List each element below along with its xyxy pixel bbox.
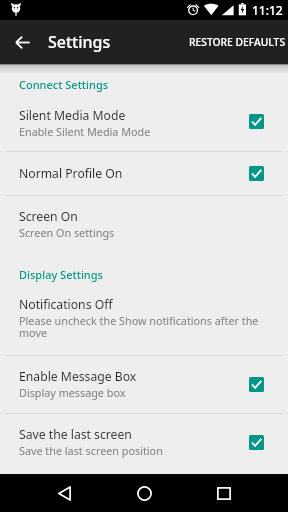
button[interactable]: Back xyxy=(40,474,88,512)
staticText: Screen On settings xyxy=(19,225,115,240)
staticText: 11:12 xyxy=(252,2,283,18)
button[interactable]: Notifications Off xyxy=(0,284,288,356)
staticText: RESTORE DEFAULTS xyxy=(189,35,286,49)
staticText: Normal Profile On xyxy=(19,165,123,182)
button[interactable]: Navigate up xyxy=(0,20,45,64)
button[interactable]: Silent Media Mode xyxy=(0,93,288,152)
button[interactable]: Save the last screen xyxy=(0,414,288,472)
staticText: Display message box xyxy=(19,385,126,400)
staticText: Save the last screen xyxy=(19,426,132,443)
button[interactable]: Home xyxy=(120,474,168,512)
staticText: Silent Media Mode xyxy=(19,107,126,124)
staticText: Save the last screen position xyxy=(19,443,163,458)
staticText: Display Settings xyxy=(19,267,103,282)
staticText: Notifications Off xyxy=(19,296,113,313)
staticText: Please uncheck the Show notifications af… xyxy=(19,313,259,340)
staticText: Enable Message Box xyxy=(19,368,137,385)
staticText: Enable Silent Media Mode xyxy=(19,124,151,139)
staticText: Screen On xyxy=(19,208,78,225)
button[interactable]: Recent apps xyxy=(200,474,248,512)
staticText: Settings xyxy=(48,31,111,53)
button[interactable]: Enable Message Box xyxy=(0,356,288,414)
staticText: Connect Settings xyxy=(19,77,109,92)
button[interactable]: Screen On xyxy=(0,196,288,255)
button[interactable]: Normal Profile On xyxy=(0,152,288,196)
button[interactable]: RESTORE DEFAULTS xyxy=(183,23,288,61)
